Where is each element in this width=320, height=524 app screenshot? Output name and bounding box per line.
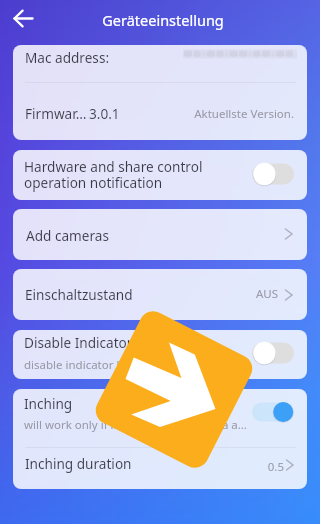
staticText: Aktuellste Version. xyxy=(114,106,294,122)
staticText: Firmwar… xyxy=(25,104,87,123)
staticText: Geräteeinstellung xyxy=(3,10,320,30)
staticText: Add cameras xyxy=(26,226,109,245)
button[interactable]: Einschaltzustand xyxy=(13,269,307,320)
staticText: will work only if in the same local area… xyxy=(24,417,247,433)
button[interactable]: Switch off xyxy=(247,158,299,190)
button[interactable]: Add cameras xyxy=(13,209,307,260)
staticText: 0.5 xyxy=(104,459,284,475)
staticText: Hardware and share control operation not… xyxy=(24,157,203,192)
staticText: Inching xyxy=(24,394,73,413)
button[interactable]: Inching duration xyxy=(13,448,307,488)
staticText: 3.0.1 xyxy=(89,104,120,123)
button[interactable]: Back xyxy=(3,4,37,34)
button[interactable]: Switch on xyxy=(247,396,299,428)
staticText: Disable Indicator xyxy=(24,333,133,352)
staticText: disable indicator light xyxy=(24,357,141,373)
staticText: Inching duration xyxy=(25,454,132,473)
staticText: AUS xyxy=(98,286,278,302)
staticText: Mac address: xyxy=(25,48,110,67)
staticText: Einschaltzustand xyxy=(25,285,133,304)
button[interactable]: Switch off xyxy=(247,337,299,369)
